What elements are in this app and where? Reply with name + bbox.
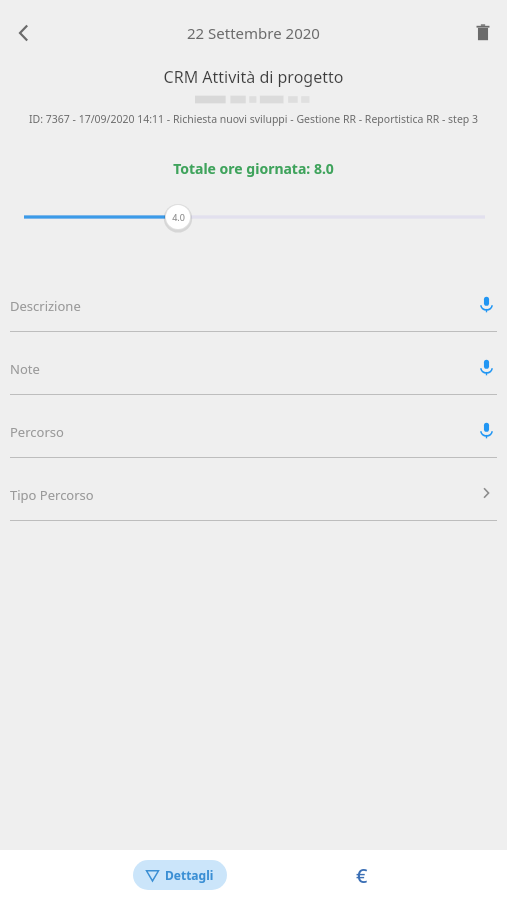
- staticText: Note: [10, 360, 40, 378]
- button[interactable]: Back: [2, 11, 46, 55]
- button[interactable]: Costi: [340, 853, 384, 897]
- staticText: CRM Attività di progetto: [0, 66, 507, 88]
- button[interactable]: Tipo Percorso: [0, 469, 507, 532]
- other: Voice input Descrizione: [478, 296, 495, 313]
- staticText: Tipo Percorso: [10, 486, 94, 504]
- button[interactable]: Delete: [461, 11, 505, 55]
- staticText: €: [356, 862, 368, 889]
- staticText: 4.0: [172, 211, 185, 223]
- staticText: 22 Settembre 2020: [187, 23, 320, 43]
- other: Voice input Percorso: [478, 422, 495, 439]
- staticText: Dettagli: [165, 867, 214, 883]
- button[interactable]: Dettagli: [133, 860, 227, 890]
- staticText: Totale ore giornata: 8.0: [0, 159, 507, 178]
- other: Open Tipo Percorso: [479, 486, 493, 500]
- staticText: Descrizione: [10, 297, 81, 315]
- staticText: ID: 7367 - 17/09/2020 14:11 - Richiesta …: [5, 112, 502, 126]
- staticText: Percorso: [10, 423, 64, 441]
- other: Voice input Note: [478, 359, 495, 376]
- button[interactable]: Descrizione: [0, 280, 507, 343]
- button[interactable]: Ore: 4.0: [0, 200, 507, 234]
- button[interactable]: Note: [0, 343, 507, 406]
- button[interactable]: Percorso: [0, 406, 507, 469]
